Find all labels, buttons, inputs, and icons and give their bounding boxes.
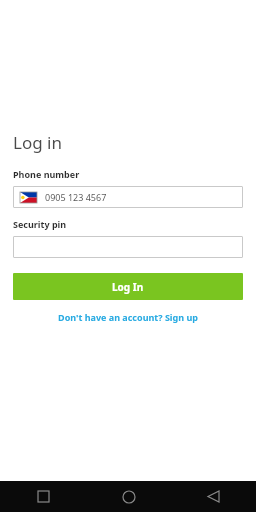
button[interactable]: Don't have an account? Sign up xyxy=(0,311,256,323)
button[interactable]: 0905 123 4567 xyxy=(13,186,243,208)
button[interactable]: Home xyxy=(86,481,171,512)
staticText: 0905 123 4567 xyxy=(45,191,107,203)
staticText: Security pin xyxy=(13,218,67,230)
staticText: Don't have an account? Sign up xyxy=(58,311,198,323)
button[interactable] xyxy=(13,236,243,258)
button[interactable]: Back xyxy=(171,481,256,512)
staticText: Log In xyxy=(112,280,144,294)
staticText: Phone number xyxy=(13,168,80,180)
button[interactable]: Log In xyxy=(13,273,243,300)
staticText: Log in xyxy=(13,131,62,154)
button[interactable]: Recent apps xyxy=(0,481,86,512)
